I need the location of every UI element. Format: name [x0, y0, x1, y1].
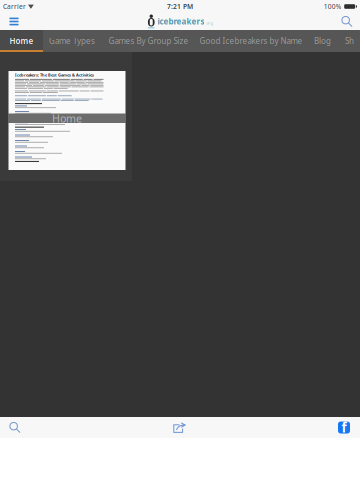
staticText: Game Types — [49, 36, 95, 46]
staticText: Home — [9, 36, 33, 46]
staticText: icebreakers — [157, 16, 204, 27]
button[interactable]: Sh — [339, 30, 360, 52]
staticText: .org — [205, 20, 212, 26]
staticText: 7:21 PM — [167, 2, 193, 11]
staticText: Home — [52, 111, 82, 125]
staticText: Games By Group Size — [108, 36, 188, 46]
button[interactable]: Share — [167, 417, 191, 438]
staticText: 100% — [324, 2, 342, 11]
button[interactable]: Games By Group Size — [101, 30, 196, 52]
staticText: Blog — [314, 36, 331, 46]
staticText: Good Icebreakers by Name — [199, 36, 302, 46]
button[interactable]: Game Types — [43, 30, 101, 52]
button[interactable]: Blog — [306, 30, 339, 52]
button[interactable]: Menu — [0, 13, 28, 30]
staticText: Icebreakers: The Best Games & Activities — [15, 72, 94, 78]
button[interactable]: Good Icebreakers by Name — [196, 30, 306, 52]
button[interactable]: Facebook — [332, 417, 356, 438]
staticText: f — [341, 418, 346, 436]
staticText: Sh — [345, 36, 354, 46]
button[interactable]: Search — [334, 13, 360, 30]
button[interactable]: Home — [0, 30, 43, 52]
button[interactable]: Search — [3, 417, 27, 438]
staticText: Carrier — [3, 2, 26, 11]
